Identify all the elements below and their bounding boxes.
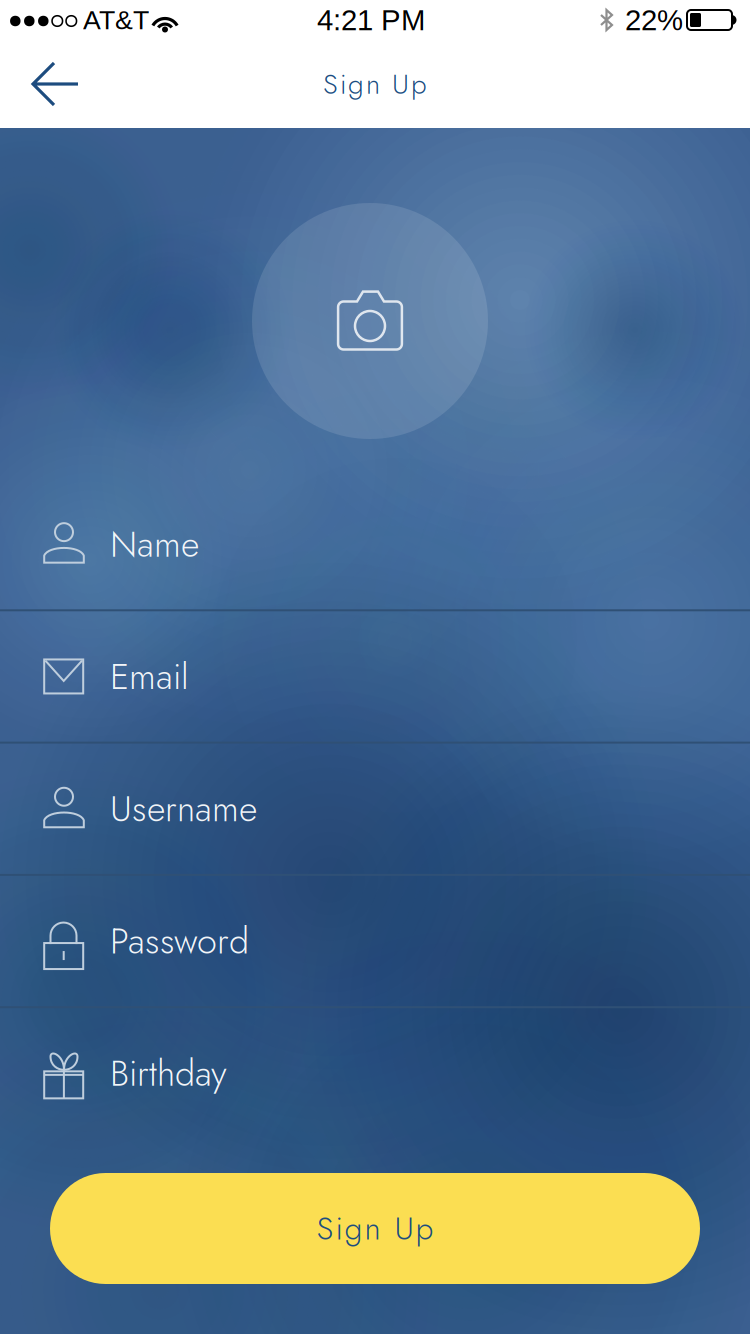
- staticText: Username: [110, 783, 257, 835]
- staticText: 4:21 PM: [317, 4, 425, 36]
- staticText: S i g n U p: [323, 64, 427, 104]
- staticText: AT&T: [83, 5, 149, 35]
- button[interactable]: Name: [0, 479, 750, 609]
- staticText: S i g n U p: [316, 1205, 433, 1252]
- button[interactable]: Email: [0, 611, 750, 742]
- staticText: Birthday: [110, 1047, 227, 1099]
- staticText: Email: [110, 650, 189, 702]
- button[interactable]: Add photo: [252, 203, 488, 439]
- button[interactable]: Birthday: [0, 1008, 750, 1138]
- staticText: Password: [110, 915, 249, 967]
- button[interactable]: S i g n U p: [50, 1173, 700, 1284]
- button[interactable]: Password: [0, 876, 750, 1006]
- button[interactable]: Username: [0, 744, 750, 874]
- staticText: 22%: [625, 4, 683, 36]
- button[interactable]: Back: [0, 40, 100, 128]
- staticText: Name: [110, 518, 199, 570]
